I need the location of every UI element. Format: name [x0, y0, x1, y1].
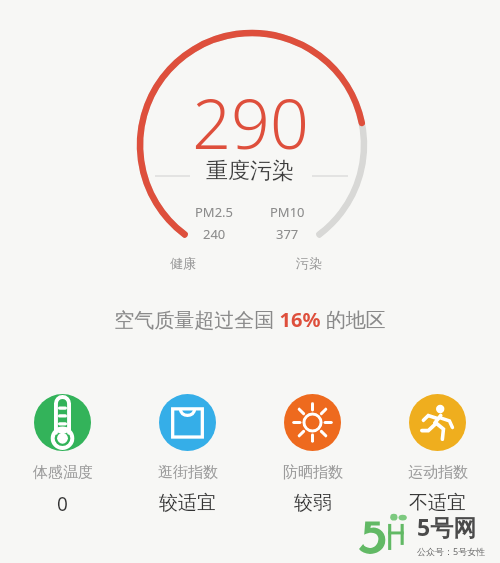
staticText: 体感温度	[33, 463, 93, 482]
button[interactable]: Sun protection index	[250, 392, 375, 517]
staticText: 较适宜	[159, 491, 216, 515]
staticText: 5号网	[417, 511, 477, 542]
button[interactable]: Exercise index	[375, 392, 500, 517]
staticText: 290	[192, 76, 309, 169]
staticText: 空气质量超过全国 16% 的地区	[114, 306, 386, 333]
staticText: 240	[203, 225, 226, 243]
staticText: 0	[57, 491, 68, 517]
staticText: 不适宜	[409, 491, 466, 515]
staticText: 逛街指数	[158, 463, 218, 482]
button[interactable]: Shopping index	[125, 392, 250, 517]
staticText: PM2.5	[195, 203, 234, 221]
staticText: 防晒指数	[283, 463, 343, 482]
staticText: 公众号：5号女性	[417, 545, 486, 557]
staticText: PM10	[270, 203, 305, 221]
staticText: 较弱	[294, 491, 332, 515]
button[interactable]: Feels like temperature	[0, 392, 125, 519]
staticText: 重度污染	[206, 157, 294, 185]
staticText: 377	[276, 225, 299, 243]
staticText: 健康	[170, 255, 196, 271]
staticText: 运动指数	[408, 463, 468, 482]
staticText: 污染	[296, 255, 322, 271]
